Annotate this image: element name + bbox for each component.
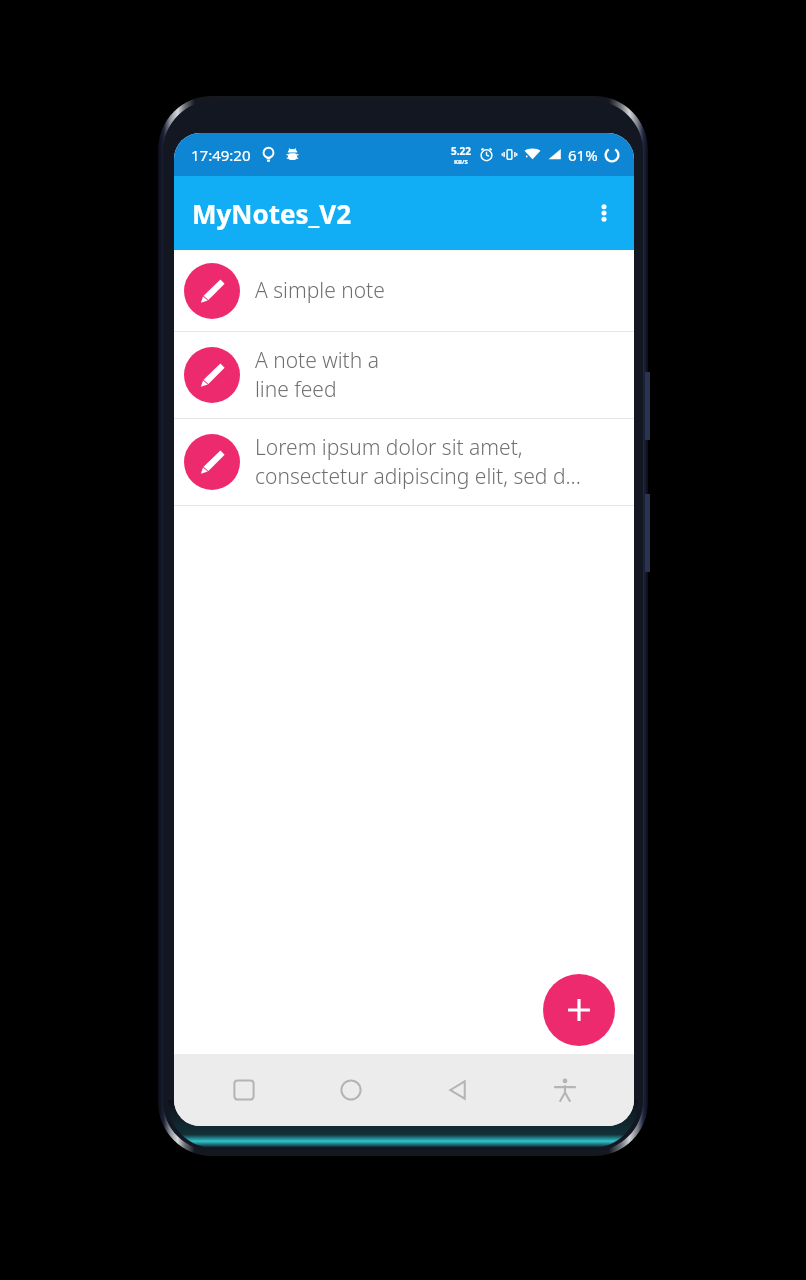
- button[interactable]: A simple note: [174, 250, 634, 331]
- staticText: A note with a: [255, 346, 379, 375]
- staticText: A simple note: [255, 276, 385, 305]
- button[interactable]: Back: [404, 1054, 511, 1126]
- button[interactable]: Lorem ipsum dolor sit amet,: [174, 419, 634, 505]
- staticText: Lorem ipsum dolor sit amet,: [255, 433, 523, 462]
- staticText: 17:49:20: [191, 145, 251, 165]
- staticText: 5.22: [451, 144, 471, 158]
- button[interactable]: Recent apps: [190, 1054, 297, 1126]
- button[interactable]: A note with a: [174, 332, 634, 418]
- staticText: line feed: [255, 375, 337, 404]
- button[interactable]: Home: [297, 1054, 404, 1126]
- button[interactable]: Add note: [543, 974, 615, 1046]
- button[interactable]: More options: [580, 189, 628, 237]
- button[interactable]: Accessibility: [511, 1054, 618, 1126]
- staticText: KB/S: [454, 158, 468, 166]
- staticText: MyNotes_V2: [192, 196, 352, 231]
- staticText: 61%: [568, 145, 598, 165]
- staticText: consectetur adipiscing elit, sed d...: [255, 462, 581, 491]
